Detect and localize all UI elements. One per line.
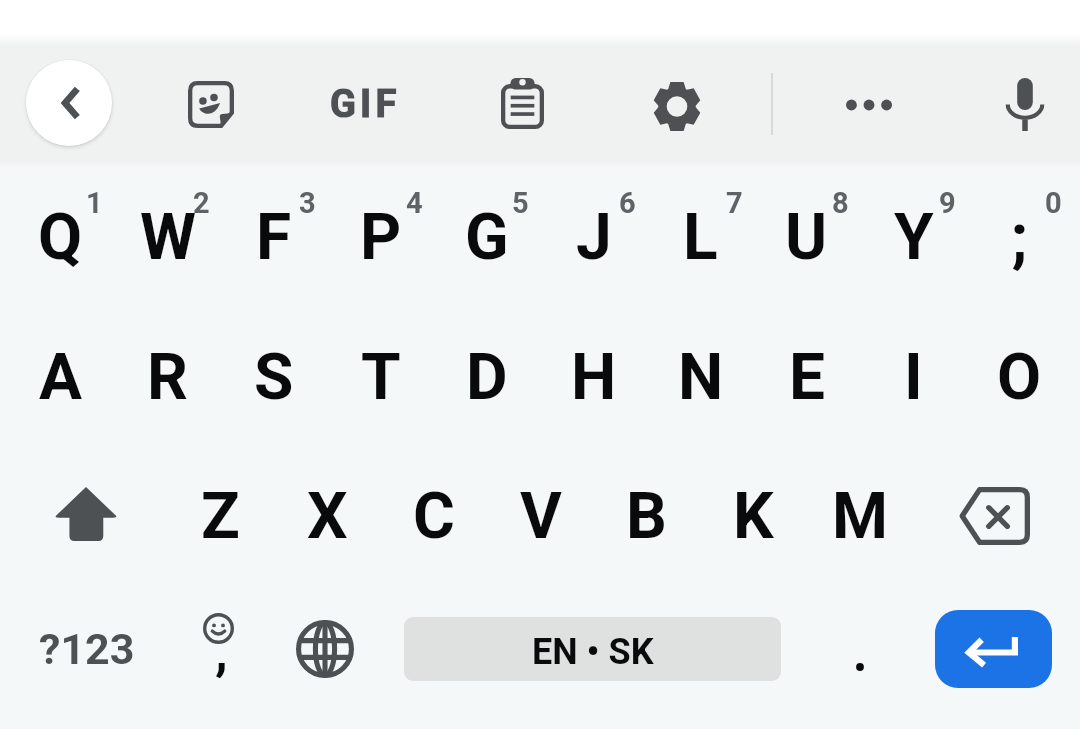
button[interactable]: X: [274, 446, 381, 586]
button[interactable]: ?123: [7, 579, 167, 719]
button[interactable]: S: [220, 307, 327, 447]
button[interactable]: C: [380, 446, 487, 586]
staticText: 9: [939, 186, 956, 220]
staticText: 3: [299, 186, 316, 220]
staticText: 1: [86, 186, 103, 220]
staticText: N: [678, 340, 724, 415]
button[interactable]: Emoji: [172, 579, 267, 719]
staticText: R: [147, 340, 188, 415]
button[interactable]: N: [647, 307, 754, 447]
staticText: 7: [726, 186, 743, 220]
staticText: A: [39, 340, 82, 415]
button[interactable]: D: [433, 307, 540, 447]
staticText: ;: [1011, 200, 1028, 275]
button[interactable]: M: [807, 446, 914, 586]
button[interactable]: H: [540, 307, 647, 447]
staticText: X: [307, 479, 348, 554]
button[interactable]: Z: [167, 446, 274, 586]
button[interactable]: G: [433, 167, 540, 307]
button[interactable]: F: [220, 167, 327, 307]
button[interactable]: B: [593, 446, 700, 586]
staticText: 0: [1045, 186, 1062, 220]
staticText: Z: [201, 479, 240, 554]
staticText: Y: [894, 200, 934, 275]
staticText: L: [683, 200, 718, 275]
button[interactable]: Settings: [631, 60, 723, 152]
staticText: V: [520, 479, 562, 554]
button[interactable]: Back: [26, 60, 112, 146]
staticText: H: [571, 340, 617, 415]
button[interactable]: Clipboard: [476, 57, 568, 149]
button[interactable]: J: [540, 167, 647, 307]
staticText: P: [360, 200, 402, 275]
button[interactable]: E: [753, 307, 860, 447]
staticText: I: [904, 340, 923, 415]
button[interactable]: Stickers: [165, 58, 257, 150]
staticText: 8: [832, 186, 849, 220]
staticText: B: [626, 479, 667, 554]
staticText: GIF: [330, 82, 401, 127]
button[interactable]: U: [753, 167, 860, 307]
button[interactable]: Change language: [277, 579, 373, 719]
staticText: T: [361, 340, 401, 415]
staticText: E: [789, 340, 825, 415]
button[interactable]: A: [7, 307, 114, 447]
staticText: O: [997, 340, 1042, 415]
button[interactable]: EN • SK: [404, 617, 781, 681]
staticText: M: [832, 479, 889, 554]
staticText: K: [733, 479, 774, 554]
staticText: 2: [193, 186, 210, 220]
button[interactable]: P: [327, 167, 434, 307]
button[interactable]: More options: [823, 59, 915, 151]
button[interactable]: GIF: [315, 58, 415, 150]
staticText: EN • SK: [532, 631, 654, 673]
button[interactable]: K: [700, 446, 807, 586]
button[interactable]: Voice input: [979, 58, 1071, 150]
button[interactable]: Q: [7, 167, 114, 307]
staticText: G: [465, 200, 509, 275]
button[interactable]: L: [647, 167, 754, 307]
button[interactable]: I: [860, 307, 967, 447]
button[interactable]: V: [487, 446, 594, 586]
button[interactable]: R: [114, 307, 221, 447]
staticText: ?123: [39, 624, 135, 674]
button[interactable]: Backspace: [913, 446, 1073, 586]
staticText: C: [413, 479, 455, 554]
button[interactable]: [810, 579, 910, 719]
staticText: S: [254, 340, 294, 415]
button[interactable]: ;: [966, 167, 1073, 307]
staticText: Q: [38, 200, 83, 275]
staticText: W: [140, 200, 196, 275]
button[interactable]: T: [327, 307, 434, 447]
button[interactable]: Enter: [935, 610, 1052, 688]
button[interactable]: O: [966, 307, 1073, 447]
staticText: 5: [512, 186, 529, 220]
staticText: ,: [215, 621, 228, 682]
button[interactable]: Y: [860, 167, 967, 307]
staticText: 4: [406, 186, 423, 220]
staticText: D: [466, 340, 508, 415]
staticText: U: [785, 200, 828, 275]
button[interactable]: Shift: [7, 446, 167, 586]
staticText: 6: [619, 186, 636, 220]
staticText: F: [256, 200, 292, 275]
staticText: J: [576, 200, 612, 275]
button[interactable]: W: [114, 167, 221, 307]
